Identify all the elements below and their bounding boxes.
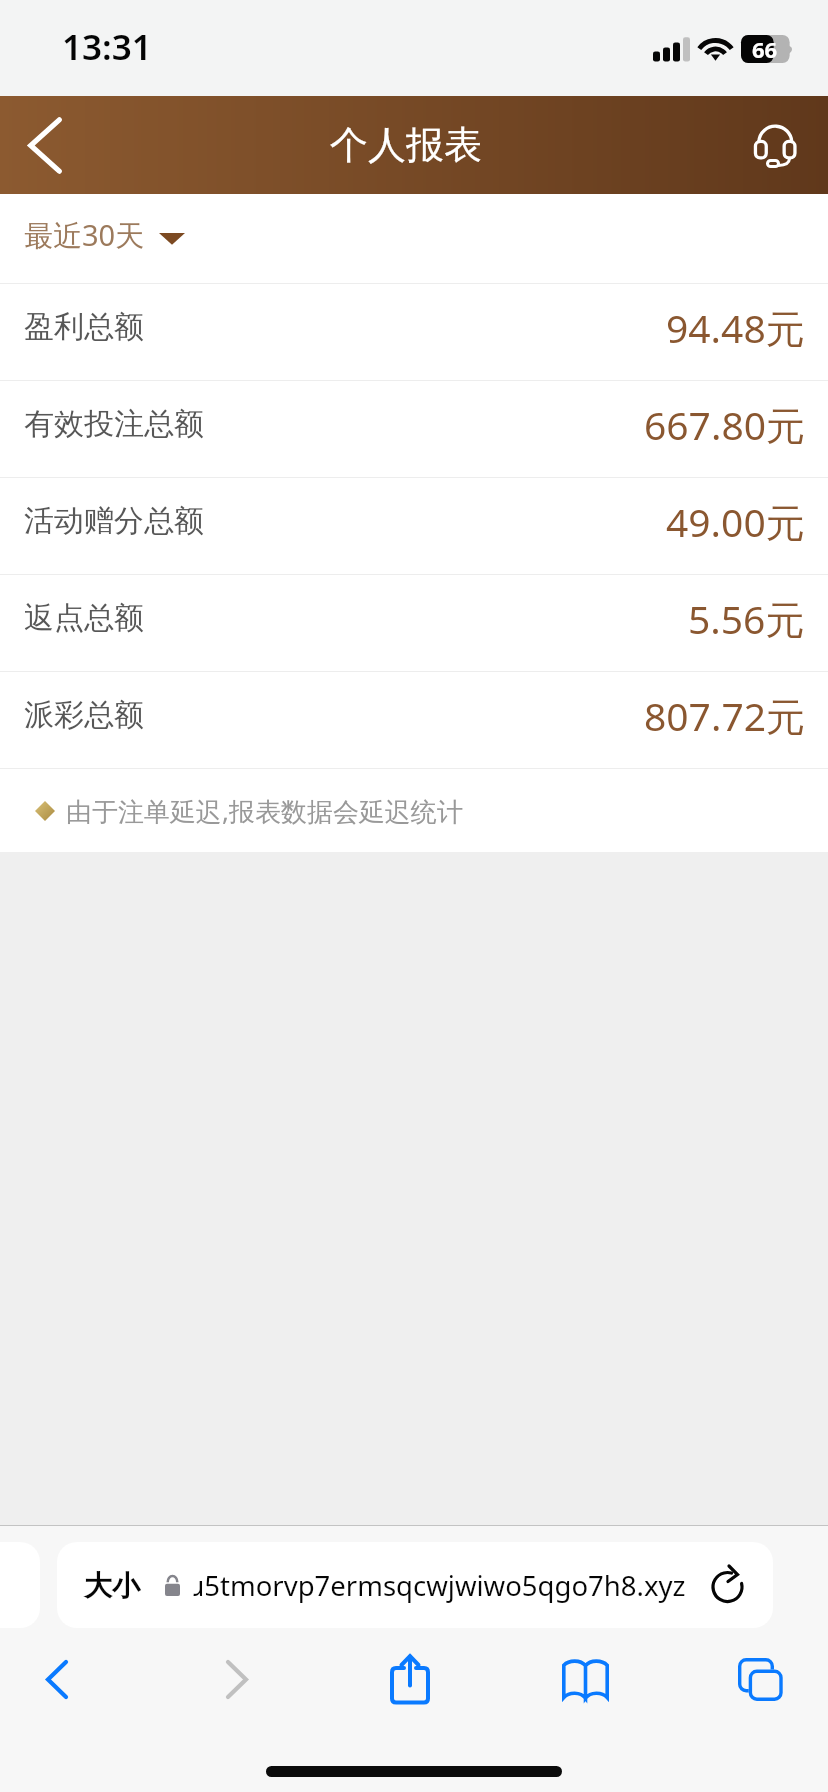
button[interactable]: 派彩总额 — [0, 672, 828, 768]
button[interactable]: 返点总额 — [0, 575, 828, 671]
staticText: 个人报表 — [330, 121, 482, 169]
button[interactable]: Back — [0, 96, 100, 194]
button[interactable]: 有效投注总额 — [0, 381, 828, 477]
button[interactable]: 大小 — [57, 1542, 773, 1628]
button[interactable]: 活动赠分总额 — [0, 478, 828, 574]
staticText: 最近30天 — [24, 215, 145, 255]
staticText: ɹ5tmorvp7ermsqcwjwiwo5qgo7h8.xyz — [193, 1567, 686, 1604]
button[interactable]: 最近30天 — [0, 194, 828, 283]
staticText: 盈利总额 — [24, 308, 144, 346]
staticText: 派彩总额 — [24, 696, 144, 734]
staticText: 667.80元 — [644, 398, 805, 451]
staticText: 大小 — [84, 1568, 140, 1603]
staticText: 49.00元 — [666, 495, 805, 548]
staticText: 807.72元 — [644, 689, 805, 742]
staticText: 5.56元 — [688, 592, 805, 645]
staticText: 66 — [752, 34, 778, 61]
button[interactable]: Customer service — [728, 96, 828, 194]
staticText: 有效投注总额 — [24, 405, 204, 443]
button[interactable]: Reload — [704, 1564, 752, 1612]
staticText: 由于注单延迟,报表数据会延迟统计 — [66, 793, 463, 829]
staticText: 13:31 — [62, 23, 152, 71]
staticText: 返点总额 — [24, 599, 144, 637]
button[interactable]: Tabs — [715, 1633, 805, 1725]
staticText: 94.48元 — [666, 301, 805, 354]
button[interactable]: Back — [12, 1633, 102, 1725]
button[interactable]: Forward — [192, 1633, 282, 1725]
button[interactable]: Share — [365, 1633, 455, 1725]
button[interactable]: Bookmarks — [540, 1633, 630, 1725]
button[interactable]: 盈利总额 — [0, 284, 828, 380]
staticText: 活动赠分总额 — [24, 502, 204, 540]
